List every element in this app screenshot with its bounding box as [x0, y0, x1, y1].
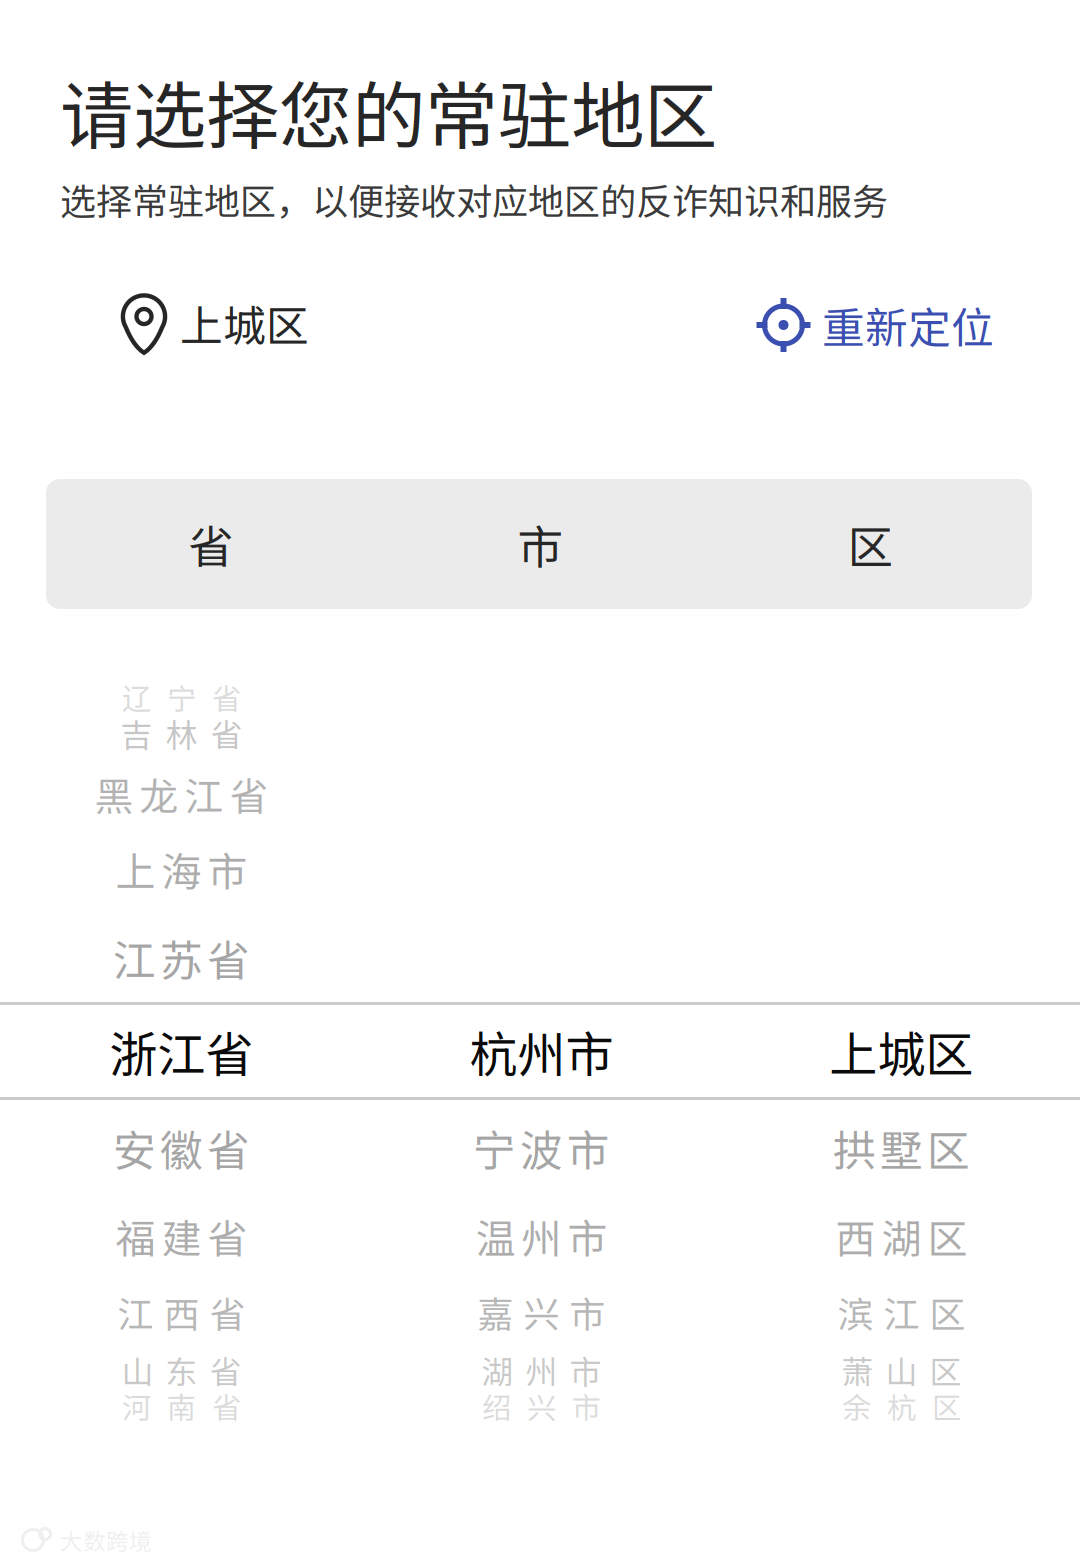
button[interactable]: 西湖区 — [721, 1198, 1080, 1274]
staticText: 绍兴市 — [482, 1385, 601, 1427]
staticText: 黑龙江省 — [94, 766, 268, 822]
staticText: 请选择您的常驻地区 — [60, 58, 717, 164]
staticText: 大数跨境 — [60, 1524, 152, 1556]
button[interactable]: 重新定位 — [756, 288, 994, 362]
staticText: 上城区 — [180, 292, 309, 354]
button[interactable]: 河南省 — [1, 1368, 361, 1444]
button[interactable]: 江西省 — [1, 1274, 361, 1350]
staticText: 上海市 — [115, 840, 247, 898]
button[interactable]: 江苏省 — [1, 920, 361, 996]
staticText: 上城区 — [829, 1016, 973, 1086]
staticText: 吉林省 — [120, 710, 242, 756]
button[interactable]: 区 — [703, 479, 1032, 609]
staticText: 杭州市 — [469, 1016, 613, 1086]
staticText: 市 — [517, 511, 562, 577]
staticText: 浙江省 — [109, 1016, 253, 1086]
button[interactable]: 宁波市 — [361, 1110, 721, 1186]
staticText: 滨江区 — [837, 1286, 965, 1338]
button[interactable]: 嘉兴市 — [361, 1274, 721, 1350]
button[interactable]: 温州市 — [361, 1198, 721, 1274]
staticText: 辽宁省 — [122, 676, 241, 718]
button[interactable]: 省 — [46, 479, 374, 609]
button[interactable]: 拱墅区 — [721, 1110, 1080, 1186]
staticText: 河南省 — [122, 1385, 241, 1427]
staticText: 萧山区 — [841, 1347, 961, 1393]
button[interactable]: 福建省 — [1, 1198, 361, 1274]
staticText: 湖州市 — [481, 1347, 601, 1393]
button[interactable]: 上城区 — [119, 286, 309, 360]
button[interactable]: 市 — [374, 479, 703, 609]
button[interactable]: 杭州市 — [361, 1013, 721, 1089]
button[interactable]: 浙江省 — [1, 1013, 361, 1089]
button[interactable]: 上海市 — [1, 831, 361, 907]
button[interactable]: 上城区 — [721, 1013, 1080, 1089]
staticText: 余杭区 — [842, 1385, 961, 1427]
button[interactable]: 辽宁省 — [1, 659, 361, 735]
staticText: 温州市 — [475, 1207, 607, 1265]
button[interactable]: 萧山区 — [721, 1332, 1080, 1408]
button[interactable]: 黑龙江省 — [1, 756, 361, 832]
button[interactable]: 绍兴市 — [361, 1368, 721, 1444]
button[interactable]: 湖州市 — [361, 1332, 721, 1408]
staticText: 拱墅区 — [833, 1117, 970, 1179]
button[interactable]: 安徽省 — [1, 1110, 361, 1186]
button[interactable]: 山东省 — [1, 1332, 361, 1408]
staticText: 区 — [847, 511, 892, 577]
staticText: 山东省 — [121, 1347, 241, 1393]
button[interactable]: 吉林省 — [1, 695, 361, 771]
staticText: 省 — [188, 511, 233, 577]
staticText: 西湖区 — [835, 1207, 967, 1265]
staticText: 江苏省 — [113, 927, 250, 989]
button[interactable]: 余杭区 — [721, 1368, 1080, 1444]
staticText: 安徽省 — [113, 1117, 250, 1179]
staticText: 选择常驻地区，以便接收对应地区的反诈知识和服务 — [60, 173, 888, 225]
staticText: 宁波市 — [473, 1117, 610, 1179]
staticText: 重新定位 — [822, 294, 994, 356]
button[interactable]: 滨江区 — [721, 1274, 1080, 1350]
staticText: 嘉兴市 — [477, 1286, 605, 1338]
staticText: 福建省 — [115, 1207, 247, 1265]
staticText: 江西省 — [117, 1286, 245, 1338]
